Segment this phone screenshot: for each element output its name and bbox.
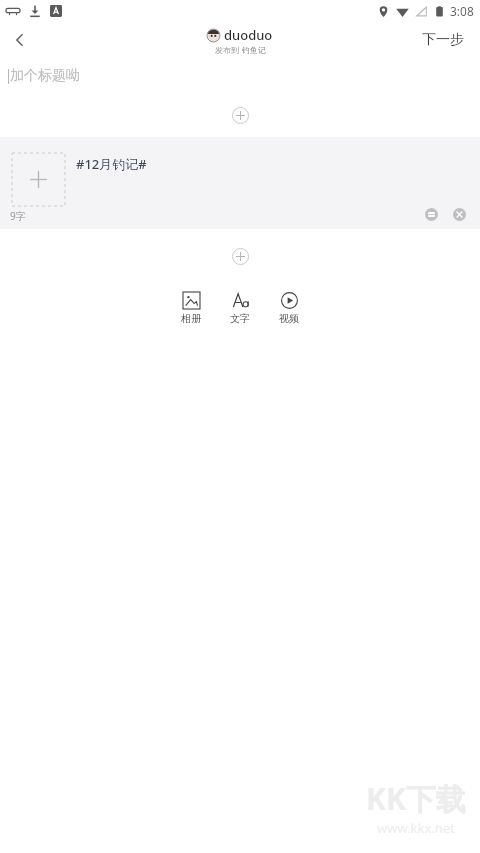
button[interactable]: 文字 xyxy=(224,290,256,327)
button[interactable]: Add image xyxy=(0,137,480,229)
staticText: www.kkx.net xyxy=(377,819,455,837)
button[interactable]: Back xyxy=(0,22,40,58)
staticText: 钓鱼记 xyxy=(242,45,266,55)
staticText: duoduo xyxy=(224,26,273,44)
button[interactable]: 加个标题呦 xyxy=(0,58,480,94)
button[interactable]: 相册 xyxy=(175,290,207,327)
staticText: 9字 xyxy=(10,209,26,223)
staticText: KK下载 xyxy=(366,778,466,819)
staticText: 文字 xyxy=(230,312,250,325)
button[interactable]: Add block xyxy=(227,102,254,129)
staticText: 加个标题呦 xyxy=(10,67,80,85)
button[interactable]: Add block xyxy=(227,243,254,270)
button[interactable]: Reorder xyxy=(420,203,442,225)
button[interactable]: 下一步 xyxy=(416,27,470,53)
staticText: 3:08 xyxy=(450,3,474,19)
button[interactable]: Add image xyxy=(12,153,65,206)
button[interactable]: 视频 xyxy=(273,290,305,327)
staticText: 相册 xyxy=(181,312,201,325)
staticText: 下一步 xyxy=(422,31,464,49)
staticText: 发布到 xyxy=(215,45,239,55)
staticText: #12月钓记# xyxy=(76,155,147,173)
button[interactable]: Delete xyxy=(448,203,470,225)
staticText: 视频 xyxy=(279,312,299,325)
